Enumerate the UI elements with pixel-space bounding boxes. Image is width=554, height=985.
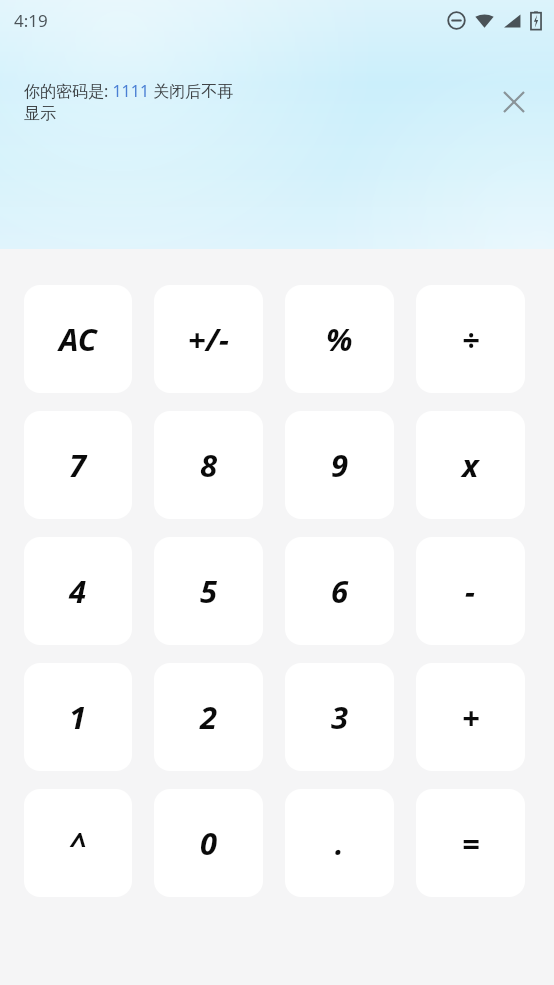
- staticText: 8: [200, 444, 218, 486]
- button[interactable]: AC: [24, 285, 132, 393]
- staticText: AC: [59, 318, 97, 360]
- staticText: ÷: [462, 318, 480, 360]
- button[interactable]: x: [416, 411, 525, 519]
- staticText: 2: [200, 696, 218, 738]
- staticText: 4: [69, 570, 87, 612]
- staticText: −: [465, 570, 476, 612]
- button[interactable]: =: [416, 789, 525, 897]
- staticText: 1: [69, 696, 87, 738]
- button[interactable]: ^: [24, 789, 132, 897]
- staticText: +/−: [188, 318, 229, 360]
- button[interactable]: +/−: [154, 285, 263, 393]
- staticText: x: [462, 444, 479, 486]
- button[interactable]: 1: [24, 663, 132, 771]
- staticText: 5: [200, 570, 218, 612]
- button[interactable]: 3: [285, 663, 394, 771]
- staticText: 4:19: [14, 9, 48, 32]
- button[interactable]: 4: [24, 537, 132, 645]
- staticText: +: [462, 696, 480, 738]
- button[interactable]: .: [285, 789, 394, 897]
- staticText: ^: [69, 822, 87, 864]
- staticText: 9: [331, 444, 349, 486]
- button[interactable]: Close: [490, 78, 538, 126]
- button[interactable]: −: [416, 537, 525, 645]
- button[interactable]: 5: [154, 537, 263, 645]
- staticText: 你的密码是: 1111 关闭后不再显示: [24, 80, 245, 124]
- staticText: 7: [69, 444, 87, 486]
- button[interactable]: 6: [285, 537, 394, 645]
- staticText: 6: [331, 570, 349, 612]
- button[interactable]: 2: [154, 663, 263, 771]
- staticText: %: [326, 318, 353, 360]
- staticText: 3: [331, 696, 349, 738]
- button[interactable]: +: [416, 663, 525, 771]
- button[interactable]: ÷: [416, 285, 525, 393]
- staticText: =: [462, 822, 480, 864]
- staticText: 0: [200, 822, 218, 864]
- button[interactable]: 8: [154, 411, 263, 519]
- button[interactable]: %: [285, 285, 394, 393]
- button[interactable]: 9: [285, 411, 394, 519]
- button[interactable]: 7: [24, 411, 132, 519]
- button[interactable]: 0: [154, 789, 263, 897]
- staticText: .: [335, 823, 344, 864]
